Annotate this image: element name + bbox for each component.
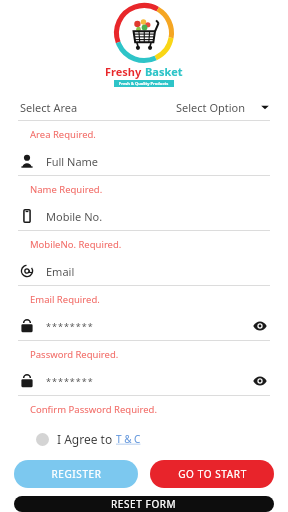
- staticText: GO TO START: [178, 467, 247, 481]
- button[interactable]: Email: [0, 257, 288, 285]
- button[interactable]: Show password: [250, 316, 270, 336]
- staticText: RESET FORM: [111, 497, 177, 511]
- staticText: Full Name: [46, 154, 99, 169]
- button[interactable]: Select Area: [0, 94, 288, 120]
- button[interactable]: GO TO START: [150, 460, 274, 488]
- staticText: ********: [46, 375, 94, 387]
- staticText: Select Area: [20, 100, 78, 115]
- staticText: MobileNo. Required.: [30, 238, 122, 251]
- staticText: Name Required.: [30, 183, 103, 196]
- staticText: T & C: [116, 432, 141, 446]
- staticText: Freshy: [105, 64, 145, 79]
- staticText: Email Required.: [30, 293, 100, 306]
- staticText: Area Required.: [30, 128, 96, 141]
- staticText: Confirm Password Required.: [30, 403, 157, 416]
- staticText: Select Option: [176, 100, 246, 115]
- button[interactable]: Mobile No.: [0, 202, 288, 230]
- staticText: ********: [46, 320, 94, 332]
- staticText: I Agree to: [57, 431, 116, 447]
- button[interactable]: RESET FORM: [14, 496, 274, 512]
- button[interactable]: ********: [0, 367, 288, 395]
- button[interactable]: Full Name: [0, 147, 288, 175]
- staticText: Mobile No.: [46, 209, 103, 224]
- staticText: REGISTER: [51, 467, 102, 481]
- button[interactable]: Agree checkbox: [36, 433, 49, 446]
- button[interactable]: Show password: [250, 371, 270, 391]
- staticText: Email: [46, 264, 75, 279]
- button[interactable]: REGISTER: [14, 460, 138, 488]
- staticText: Fresh & Quality Products: [119, 81, 169, 86]
- button[interactable]: ********: [0, 312, 288, 340]
- staticText: Basket: [145, 64, 183, 79]
- staticText: Password Required.: [30, 348, 119, 361]
- button[interactable]: T & C: [116, 432, 141, 446]
